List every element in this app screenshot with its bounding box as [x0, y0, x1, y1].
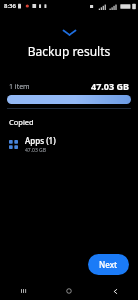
staticText: 47.03 GB [25, 147, 46, 154]
staticText: 1 item [9, 82, 30, 92]
staticText: Apps (1) [25, 135, 56, 146]
staticText: Next [99, 259, 118, 270]
staticText: 8:36 [4, 2, 16, 10]
staticText: Backup results [0, 43, 138, 59]
staticText: Copied [9, 117, 34, 127]
button[interactable]: Apps (1) [0, 134, 138, 155]
button[interactable]: Home [46, 282, 92, 300]
button[interactable]: Recents [0, 282, 46, 300]
button[interactable]: Back [92, 282, 138, 300]
staticText: 47.03 GB [91, 80, 129, 92]
button[interactable]: Next [88, 254, 129, 275]
